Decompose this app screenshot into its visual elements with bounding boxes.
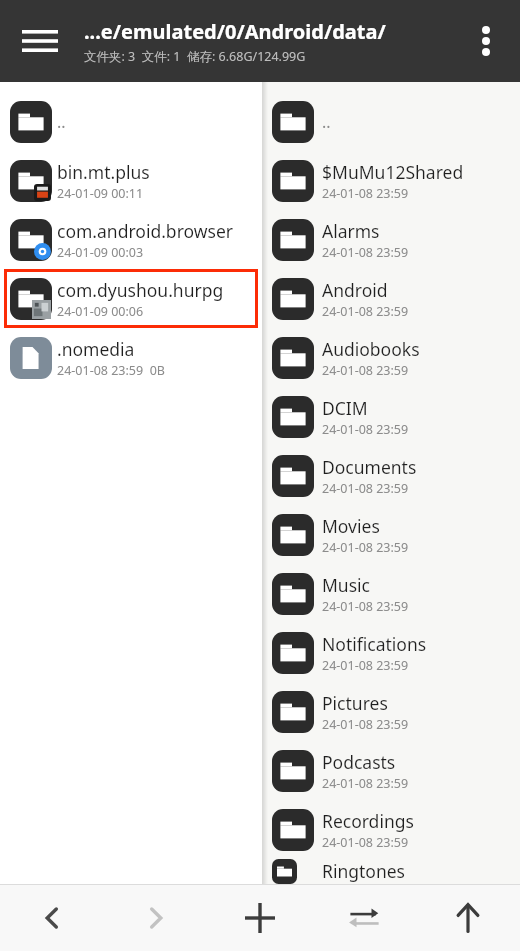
- staticText: $MuMu12Shared: [322, 160, 464, 184]
- button[interactable]: com.android.browser: [0, 210, 262, 269]
- staticText: Pictures: [322, 691, 388, 715]
- button[interactable]: Podcasts: [262, 741, 520, 800]
- button[interactable]: DCIM: [262, 387, 520, 446]
- button[interactable]: $MuMu12Shared: [262, 151, 520, 210]
- staticText: 24-01-08 23:59: [322, 775, 409, 792]
- staticText: 24-01-08 23:59: [322, 480, 409, 497]
- staticText: 24-01-08 23:59: [322, 421, 409, 438]
- button[interactable]: Documents: [262, 446, 520, 505]
- staticText: Android: [322, 278, 388, 302]
- staticText: DCIM: [322, 396, 368, 420]
- button[interactable]: Notifications: [262, 623, 520, 682]
- staticText: bin.mt.plus: [57, 160, 150, 184]
- button[interactable]: bin.mt.plus: [0, 151, 262, 210]
- staticText: 24-01-08 23:59 0B: [57, 362, 165, 379]
- staticText: 24-01-08 23:59: [322, 539, 409, 556]
- staticText: 24-01-08 23:59: [322, 244, 409, 261]
- button[interactable]: Android: [262, 269, 520, 328]
- staticText: 24-01-09 00:11: [57, 185, 144, 202]
- staticText: Podcasts: [322, 750, 396, 774]
- staticText: ..: [57, 111, 66, 133]
- staticText: 24-01-08 23:59: [322, 303, 409, 320]
- staticText: Movies: [322, 514, 380, 538]
- button[interactable]: ..: [262, 92, 520, 151]
- staticText: 24-01-08 23:59: [322, 185, 409, 202]
- staticText: 24-01-08 23:59: [322, 362, 409, 379]
- staticText: Notifications: [322, 632, 427, 656]
- staticText: Music: [322, 573, 370, 597]
- button[interactable]: com.dyushou.hurpg: [4, 269, 258, 328]
- button[interactable]: Music: [262, 564, 520, 623]
- button[interactable]: Forward: [104, 885, 208, 951]
- button[interactable]: Add: [208, 885, 312, 951]
- staticText: ..: [322, 111, 331, 133]
- button[interactable]: Menu: [8, 9, 72, 73]
- staticText: 24-01-08 23:59: [322, 716, 409, 733]
- staticText: Recordings: [322, 809, 414, 833]
- staticText: Audiobooks: [322, 337, 420, 361]
- staticText: 24-01-09 00:06: [57, 303, 144, 320]
- staticText: 24-01-08 23:59: [322, 657, 409, 674]
- button[interactable]: Switch: [312, 885, 416, 951]
- staticText: com.dyushou.hurpg: [57, 278, 224, 302]
- button[interactable]: Pictures: [262, 682, 520, 741]
- staticText: ...e/emulated/0/Android/data/: [84, 18, 386, 45]
- staticText: Alarms: [322, 219, 380, 243]
- staticText: com.android.browser: [57, 219, 233, 243]
- button[interactable]: Recordings: [262, 800, 520, 859]
- staticText: 文件夹: 3 文件: 1 储存: 6.68G/124.99G: [84, 48, 306, 65]
- button[interactable]: Up: [416, 885, 520, 951]
- staticText: Documents: [322, 455, 417, 479]
- staticText: 24-01-08 23:59: [322, 834, 409, 851]
- button[interactable]: Audiobooks: [262, 328, 520, 387]
- button[interactable]: More options: [458, 13, 514, 69]
- button[interactable]: ..: [0, 92, 262, 151]
- staticText: 24-01-08 23:59: [322, 598, 409, 615]
- staticText: 24-01-09 00:03: [57, 244, 144, 261]
- button[interactable]: Movies: [262, 505, 520, 564]
- button[interactable]: .nomedia: [0, 328, 262, 387]
- staticText: .nomedia: [57, 337, 135, 361]
- button[interactable]: Alarms: [262, 210, 520, 269]
- staticText: Ringtones: [322, 859, 405, 883]
- button[interactable]: Back: [0, 885, 104, 951]
- button[interactable]: Ringtones: [262, 859, 520, 884]
